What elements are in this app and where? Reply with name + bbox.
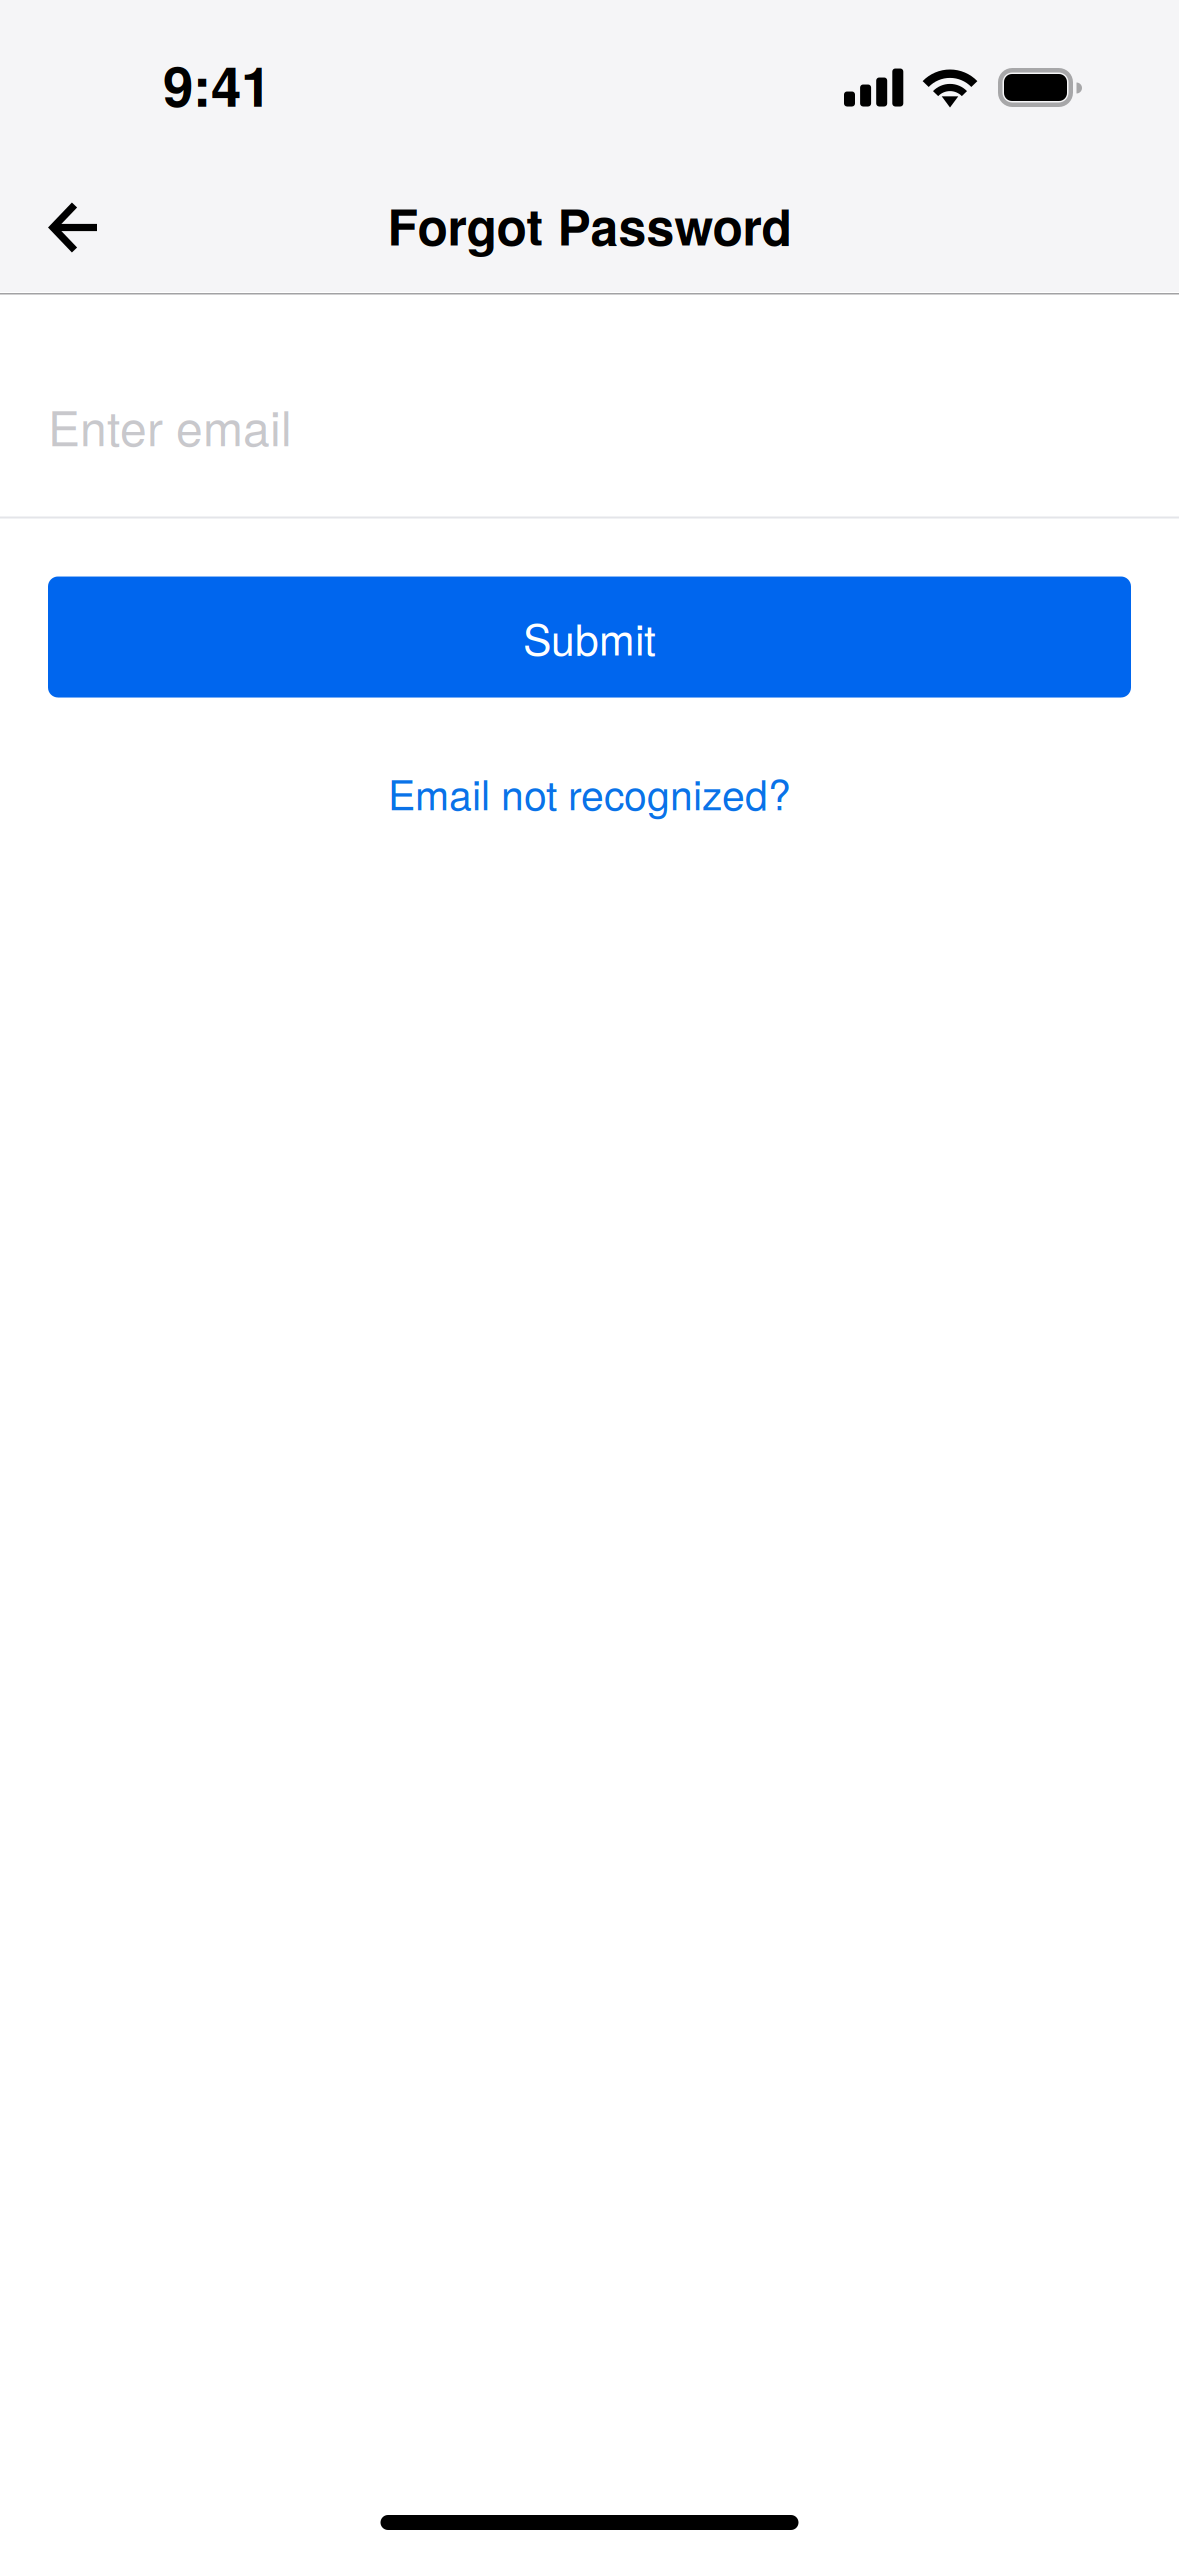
staticText: Enter email [48, 391, 292, 460]
button[interactable]: Enter email [0, 403, 1179, 447]
staticText: 9:41 [163, 45, 271, 124]
button[interactable]: Email not recognized? [359, 762, 819, 822]
button[interactable]: Back [24, 183, 121, 279]
staticText: Email not recognized? [388, 763, 791, 822]
staticText: Submit [523, 606, 656, 668]
staticText: Forgot Password [387, 189, 791, 261]
button[interactable]: Submit [48, 576, 1131, 697]
